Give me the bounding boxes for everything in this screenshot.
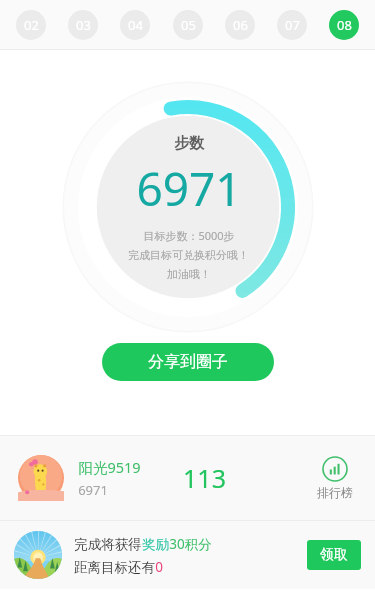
staticText: 0	[155, 558, 163, 576]
button[interactable]: 06	[225, 10, 255, 40]
button[interactable]: 02	[16, 10, 46, 40]
button[interactable]: 阳光9519	[0, 436, 375, 520]
staticText: 完成将获得	[74, 536, 142, 553]
staticText: 05	[181, 16, 196, 34]
button[interactable]: 04	[120, 10, 150, 40]
staticText: 阳光9519	[78, 457, 141, 477]
staticText: 6971	[78, 481, 108, 499]
staticText: 完成目标可兑换积分哦！	[128, 248, 249, 262]
button[interactable]: 分享到圈子	[102, 343, 274, 381]
staticText: 08	[337, 16, 352, 34]
staticText: 分享到圈子	[148, 352, 228, 372]
staticText: 奖励	[142, 536, 169, 553]
staticText: 04	[128, 16, 143, 34]
staticText: 领取	[320, 546, 348, 564]
staticText: 排行榜	[317, 485, 353, 500]
staticText: 03	[76, 16, 91, 34]
staticText: 步数	[174, 134, 204, 153]
staticText: 07	[285, 16, 300, 34]
button[interactable]: 05	[173, 10, 203, 40]
staticText: 02	[24, 16, 39, 34]
button[interactable]: 排行榜	[313, 452, 357, 504]
staticText: 30积分	[169, 535, 212, 553]
staticText: 113	[183, 461, 226, 495]
staticText: 加油哦！	[167, 267, 211, 281]
staticText: 距离目标还有	[74, 559, 155, 576]
staticText: 目标步数：5000步	[143, 228, 235, 243]
button[interactable]: 08	[329, 10, 359, 40]
staticText: 06	[233, 16, 248, 34]
staticText: 6971	[136, 157, 242, 220]
button[interactable]: 领取	[307, 540, 361, 570]
button[interactable]: 07	[277, 10, 307, 40]
button[interactable]: 03	[68, 10, 98, 40]
